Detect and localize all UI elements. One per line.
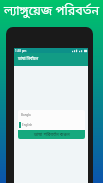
button[interactable]: English <box>18 120 85 130</box>
staticText: ভাষা পরিবর্তন করুন <box>34 132 70 138</box>
staticText: ভাষা নির্বাচন <box>18 56 39 61</box>
staticText: Bangla <box>21 113 31 117</box>
staticText: 1:38 pm <box>15 49 27 53</box>
staticText: ল্যাঙ্গুয়েজ পরিবর্তন <box>0 4 103 21</box>
staticText: English <box>22 123 33 127</box>
button[interactable]: Bangla <box>18 110 85 120</box>
button[interactable]: ভাষা পরিবর্তন করুন <box>18 130 85 139</box>
